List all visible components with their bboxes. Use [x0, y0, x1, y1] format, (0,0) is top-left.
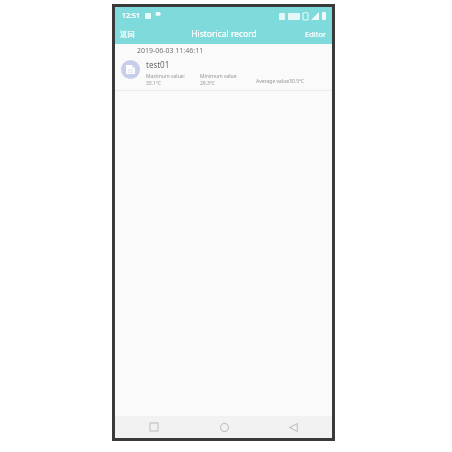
staticText: Maximum value: — [146, 73, 185, 80]
button[interactable]: Back — [284, 418, 302, 436]
staticText: Minimum value — [200, 73, 237, 80]
staticText: test01 — [146, 59, 170, 70]
button[interactable]: Editor — [300, 24, 332, 44]
staticText: Editor — [305, 29, 327, 39]
staticText: Average value30.5℃ — [256, 78, 304, 85]
staticText: 2019-06-03 11:46:11 — [137, 46, 204, 56]
staticText: 返回 — [120, 30, 135, 39]
staticText: 29.3℃ — [200, 80, 215, 87]
staticText: 12:51 — [122, 11, 140, 21]
staticText: 33.1℃ — [146, 80, 161, 87]
button[interactable]: Back — [115, 24, 140, 44]
button[interactable]: Recent apps — [145, 418, 163, 436]
staticText: Historical record — [191, 28, 257, 40]
button[interactable]: Home — [215, 418, 233, 436]
button[interactable]: test01 — [115, 58, 332, 90]
